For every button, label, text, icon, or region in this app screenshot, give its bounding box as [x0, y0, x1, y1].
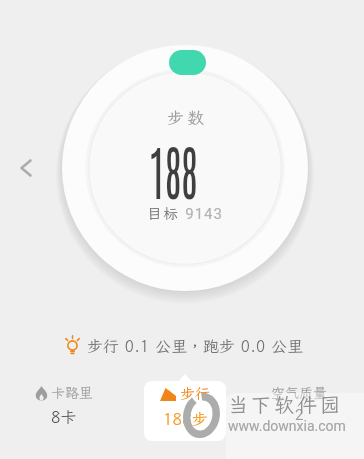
staticText: 空气质量: [271, 384, 327, 402]
staticText: 188步: [163, 408, 208, 429]
button[interactable]: [169, 50, 206, 75]
button[interactable]: 步行: [144, 381, 226, 441]
staticText: www.downxia.com: [228, 418, 346, 434]
button[interactable]: 卡路里: [14, 384, 114, 440]
button[interactable]: 空气质量: [249, 384, 349, 440]
staticText: 188: [149, 130, 198, 207]
staticText: 步行 0.1 公里，跑步 0.0 公里: [87, 335, 304, 356]
staticText: 步数: [167, 106, 207, 128]
staticText: 步行: [180, 384, 211, 404]
staticText: 当下软件园: [228, 391, 343, 417]
staticText: 目标 9143: [147, 204, 223, 224]
staticText: 2: [295, 406, 304, 424]
staticText: 8卡: [51, 406, 77, 427]
button[interactable]: [10, 152, 42, 184]
staticText: 卡路里: [51, 384, 93, 402]
